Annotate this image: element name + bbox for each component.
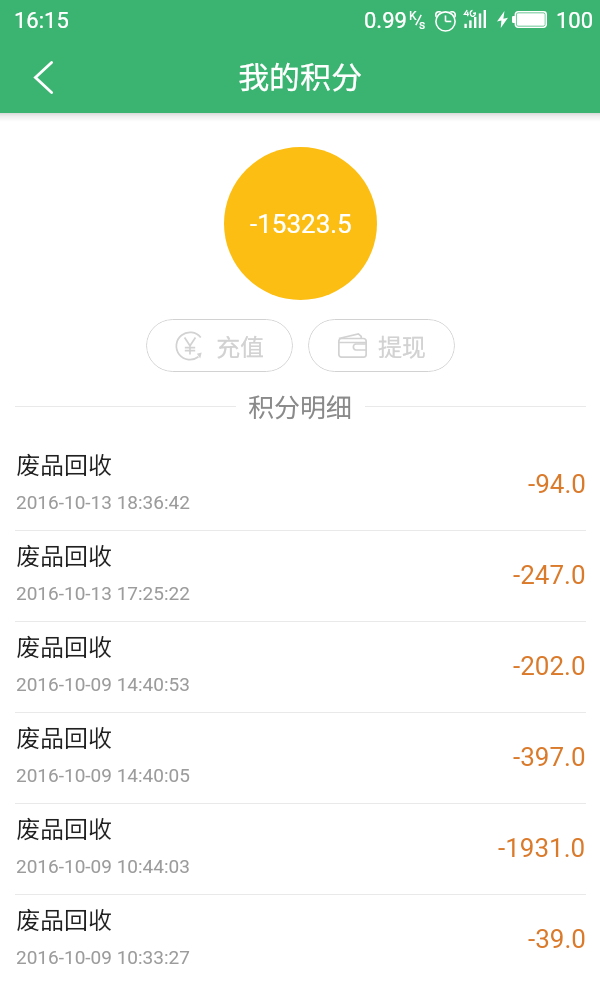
button[interactable]: 废品回收 xyxy=(0,440,600,530)
staticText: 16:15 xyxy=(14,8,69,34)
staticText: 2016-10-13 18:36:42 xyxy=(16,491,190,513)
staticText: 100 xyxy=(556,8,594,34)
button[interactable]: 充值 xyxy=(146,319,293,372)
staticText: 废品回收 xyxy=(16,537,112,572)
staticText: -247.0 xyxy=(513,560,586,590)
button[interactable]: 废品回收 xyxy=(0,804,600,894)
staticText: -1931.0 xyxy=(498,833,586,863)
staticText: 充值 xyxy=(216,328,264,363)
button[interactable]: 废品回收 xyxy=(0,622,600,712)
staticText: -202.0 xyxy=(513,651,586,681)
staticText: 2016-10-13 17:25:22 xyxy=(16,582,190,604)
staticText: 2016-10-09 10:44:03 xyxy=(16,855,190,877)
staticText: 2016-10-09 10:33:27 xyxy=(16,946,190,968)
staticText: 我的积分 xyxy=(238,53,362,98)
button[interactable]: 废品回收 xyxy=(0,895,600,985)
staticText: 提现 xyxy=(378,328,426,363)
staticText: s xyxy=(419,18,426,32)
staticText: 废品回收 xyxy=(16,810,112,845)
staticText: -94.0 xyxy=(528,469,586,499)
button[interactable]: Back xyxy=(12,46,74,108)
staticText: K xyxy=(409,9,417,23)
staticText: -39.0 xyxy=(528,924,586,954)
staticText: 2016-10-09 14:40:53 xyxy=(16,673,190,695)
staticText: 废品回收 xyxy=(16,719,112,754)
button[interactable]: 提现 xyxy=(308,319,455,372)
button[interactable]: 废品回收 xyxy=(0,531,600,621)
staticText: 积分明细 xyxy=(248,387,353,425)
staticText: 废品回收 xyxy=(16,628,112,663)
staticText: 废品回收 xyxy=(16,446,112,481)
button[interactable]: 废品回收 xyxy=(0,713,600,803)
staticText: 废品回收 xyxy=(16,901,112,936)
staticText: -397.0 xyxy=(513,742,586,772)
staticText: -15323.5 xyxy=(250,209,352,239)
staticText: 0.99 xyxy=(364,8,407,34)
button[interactable]: -15323.5 xyxy=(224,147,377,300)
staticText: 2016-10-09 14:40:05 xyxy=(16,764,190,786)
